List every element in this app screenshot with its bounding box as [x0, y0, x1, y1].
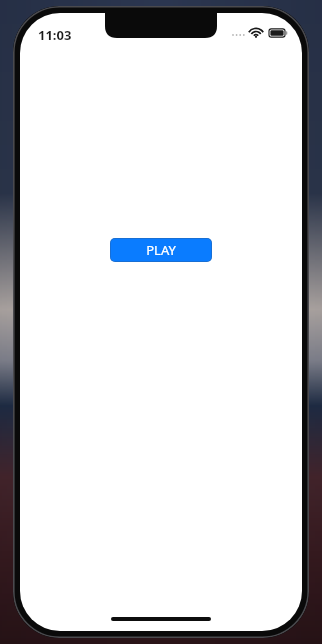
staticText: 11:03	[38, 26, 72, 44]
button[interactable]: PLAY	[110, 238, 212, 262]
staticText: PLAY	[146, 241, 176, 259]
